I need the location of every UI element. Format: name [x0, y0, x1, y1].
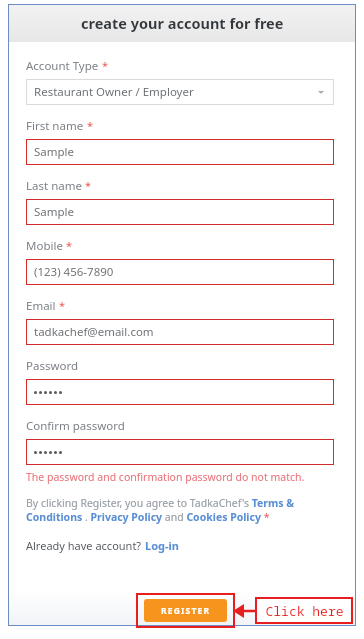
button[interactable]: tadkachef@email.com	[26, 319, 334, 345]
staticText: Last name	[26, 178, 82, 194]
button[interactable]: Restaurant Owner / Employer	[26, 79, 334, 105]
staticText: *	[66, 238, 73, 253]
staticText: Account Type	[26, 58, 99, 74]
staticText: Password	[26, 358, 79, 374]
staticText: *	[87, 118, 94, 133]
staticText: *	[85, 178, 92, 193]
staticText: Confirm password	[26, 418, 125, 434]
staticText: Sample	[34, 204, 75, 220]
staticText: create your account for free	[81, 13, 284, 33]
staticText: Already have account?	[26, 538, 145, 553]
other: Arrow pointing to Register button	[233, 602, 257, 620]
staticText: tadkachef@email.com	[34, 324, 154, 340]
button[interactable]: (123) 456-7890	[26, 259, 334, 285]
staticText: Email	[26, 298, 56, 314]
button[interactable]: By clicking Register, you agree to Tadka…	[26, 496, 334, 524]
staticText: Log-in	[145, 538, 179, 553]
button[interactable]: REGISTER	[144, 599, 227, 622]
staticText: The password and confirmation password d…	[26, 470, 305, 484]
button[interactable]: Already have account?	[26, 538, 179, 553]
staticText: *	[102, 58, 109, 73]
staticText: Restaurant Owner / Employer	[34, 84, 194, 100]
button[interactable]: Sample	[26, 199, 334, 225]
staticText: Mobile	[26, 238, 63, 254]
staticText: By clicking Register, you agree to Tadka…	[26, 496, 334, 524]
button[interactable]	[26, 439, 334, 465]
staticText: Click here	[265, 602, 344, 620]
button[interactable]: Sample	[26, 139, 334, 165]
staticText: *	[59, 298, 66, 313]
staticText: (123) 456-7890	[34, 264, 114, 280]
button[interactable]: Click here	[255, 597, 353, 624]
button[interactable]	[26, 379, 334, 405]
staticText: Sample	[34, 144, 75, 160]
staticText: First name	[26, 118, 84, 134]
staticText: REGISTER	[161, 605, 211, 617]
